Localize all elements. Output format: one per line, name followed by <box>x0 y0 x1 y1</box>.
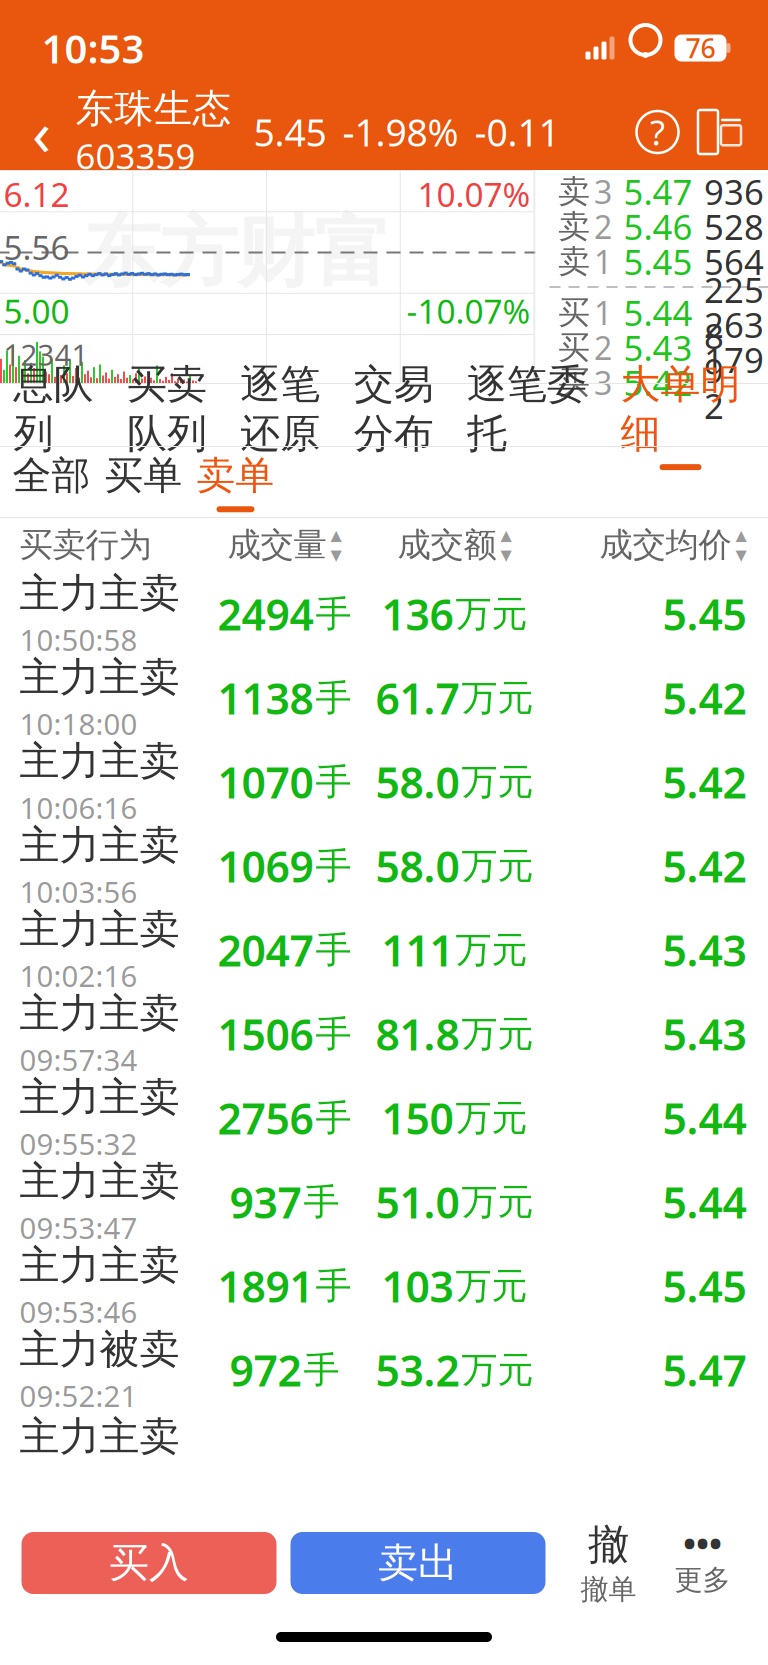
button[interactable]: 逐笔还原 <box>228 384 332 446</box>
staticText: 5.42 <box>662 754 746 810</box>
staticText: 买入 <box>109 1538 189 1587</box>
staticText: 936 <box>704 168 764 214</box>
staticText: 交易分布 <box>354 360 434 458</box>
button[interactable]: 大单明细 <box>608 384 752 446</box>
staticText: 卖出 <box>378 1538 458 1587</box>
staticText: 5.44 <box>623 289 692 335</box>
staticText: 5.46 <box>623 203 692 249</box>
button[interactable]: 成交均价 <box>599 524 746 565</box>
staticText: 5.44 <box>662 1090 746 1146</box>
staticText: 5.43 <box>662 922 746 978</box>
staticText: 万元 <box>455 1264 527 1308</box>
button[interactable]: 息队列 <box>1 384 105 446</box>
staticText: 手 <box>315 592 351 636</box>
button[interactable]: 买单 <box>97 447 189 517</box>
staticText: ▼ <box>330 546 341 563</box>
staticText: 东珠生态 <box>75 85 231 133</box>
staticText: 5.47 <box>662 1342 746 1398</box>
staticText: 更多 <box>674 1563 730 1597</box>
staticText: 主力主卖 <box>19 1157 179 1206</box>
staticText: 1792 <box>704 336 764 429</box>
staticText: 主力主卖 <box>19 1073 179 1122</box>
staticText: -0.11 <box>474 107 559 157</box>
staticText: 1 <box>594 291 612 334</box>
staticText: 5.45 <box>662 586 746 642</box>
staticText: 手 <box>315 844 351 888</box>
staticText: 150 <box>381 1090 453 1146</box>
staticText: 手 <box>315 676 351 720</box>
button[interactable]: 帮助 <box>626 101 688 163</box>
staticText: 成交额 <box>397 524 496 565</box>
staticText: 103 <box>381 1258 453 1314</box>
button[interactable]: 逐笔委托 <box>455 384 599 446</box>
staticText: 卖 <box>558 172 590 211</box>
staticText: 111 <box>381 922 453 978</box>
staticText: 6.12 <box>3 172 69 216</box>
staticText: 撤 <box>588 1519 629 1570</box>
staticText: ▼ <box>735 546 746 563</box>
button[interactable]: 切换横屏 <box>688 101 750 163</box>
button[interactable]: 全部 <box>5 447 97 517</box>
staticText: 10:02:16 <box>19 956 137 995</box>
staticText: 万元 <box>455 928 527 972</box>
button[interactable]: 买卖队列 <box>115 384 219 446</box>
staticText: 买 <box>558 328 590 367</box>
staticText: 1891 <box>217 1258 313 1314</box>
button[interactable]: 撤 <box>570 1528 646 1598</box>
staticText: 手 <box>315 928 351 972</box>
staticText: 息队列 <box>13 360 93 458</box>
staticText: 937 <box>229 1174 301 1230</box>
staticText: 2047 <box>217 922 313 978</box>
staticText: 卖 <box>558 242 590 281</box>
button[interactable]: 成交量 <box>199 524 369 565</box>
button[interactable]: 买入 <box>21 1532 276 1594</box>
button[interactable]: 交易分布 <box>342 384 446 446</box>
staticText: 大单明细 <box>620 360 740 458</box>
button[interactable]: 成交额 <box>369 524 539 565</box>
staticText: 12341 <box>3 335 88 374</box>
staticText: 09:55:32 <box>19 1124 137 1163</box>
staticText: 5.43 <box>662 1006 746 1062</box>
button[interactable]: 返回 <box>13 96 69 168</box>
staticText: -1.98% <box>342 107 458 157</box>
staticText: 买卖行为 <box>19 524 151 565</box>
staticText: 5.42 <box>623 359 692 405</box>
staticText: 5.43 <box>623 324 692 370</box>
staticText: 10:53 <box>41 21 144 74</box>
staticText: 手 <box>303 1348 339 1392</box>
staticText: 972 <box>229 1342 301 1398</box>
staticText: 5.44 <box>662 1174 746 1230</box>
staticText: 58.0 <box>375 838 459 894</box>
staticText: 撤单 <box>580 1572 636 1607</box>
staticText: 5.45 <box>623 238 692 284</box>
staticText: ▼ <box>500 546 511 563</box>
staticText: 136 <box>381 586 453 642</box>
staticText: 5.45 <box>662 1258 746 1314</box>
staticText: ▲ <box>735 527 746 543</box>
staticText: 卖 <box>558 207 590 246</box>
button[interactable]: ••• <box>664 1528 740 1598</box>
button[interactable]: 卖单 <box>189 447 281 517</box>
staticText: 5.56 <box>3 225 69 269</box>
staticText: 1070 <box>217 754 313 810</box>
staticText: 3 <box>594 361 612 404</box>
staticText: ▲ <box>500 527 511 543</box>
staticText: 10:03:56 <box>19 872 137 911</box>
staticText: 万元 <box>455 1096 527 1140</box>
staticText: 58.0 <box>375 754 459 810</box>
staticText: ••• <box>683 1520 722 1566</box>
button[interactable]: 卖出 <box>290 1532 545 1594</box>
staticText: 2 <box>594 326 612 369</box>
staticText: 万元 <box>455 592 527 636</box>
staticText: 5.45 <box>253 107 326 157</box>
staticText: 主力主卖 <box>19 1412 179 1461</box>
staticText: 万元 <box>461 676 533 720</box>
staticText: 09:53:46 <box>19 1292 137 1331</box>
staticText: 主力主卖 <box>19 653 179 702</box>
staticText: 买 <box>558 363 590 402</box>
staticText: 603359 <box>75 133 195 179</box>
staticText: 主力主卖 <box>19 989 179 1038</box>
staticText: 81.8 <box>375 1006 459 1062</box>
staticText: 手 <box>315 760 351 804</box>
staticText: 2756 <box>217 1090 313 1146</box>
